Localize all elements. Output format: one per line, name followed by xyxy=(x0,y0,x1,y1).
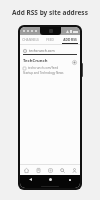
button[interactable]: Library xyxy=(32,165,44,175)
button[interactable]: Home xyxy=(20,165,32,175)
button[interactable]: CHANNELS xyxy=(20,35,40,44)
button[interactable]: Search xyxy=(56,165,68,175)
staticText: techcrunch.com xyxy=(29,48,55,53)
staticText: TechCrunch xyxy=(23,58,48,64)
button[interactable]: FEED xyxy=(40,35,60,44)
button[interactable]: Back xyxy=(20,175,40,184)
button[interactable]: Profile xyxy=(68,165,80,175)
staticText: Add RSS by site address xyxy=(12,8,88,17)
staticText: Startup and Technology News xyxy=(23,71,64,75)
button[interactable]: Saved xyxy=(44,165,56,175)
button[interactable]: TechCrunch xyxy=(23,58,77,75)
button[interactable]: techcrunch.com xyxy=(23,47,77,54)
staticText: CHANNELS xyxy=(22,38,39,42)
button[interactable]: Subscribe xyxy=(72,60,77,65)
staticText: FEED xyxy=(46,38,54,42)
button[interactable]: Recent apps xyxy=(60,175,80,184)
button[interactable]: Home xyxy=(40,175,60,184)
staticText: ADD RSS xyxy=(63,38,77,42)
staticText: techcrunch.com/feed xyxy=(28,66,58,70)
button[interactable]: ADD RSS xyxy=(60,35,80,44)
